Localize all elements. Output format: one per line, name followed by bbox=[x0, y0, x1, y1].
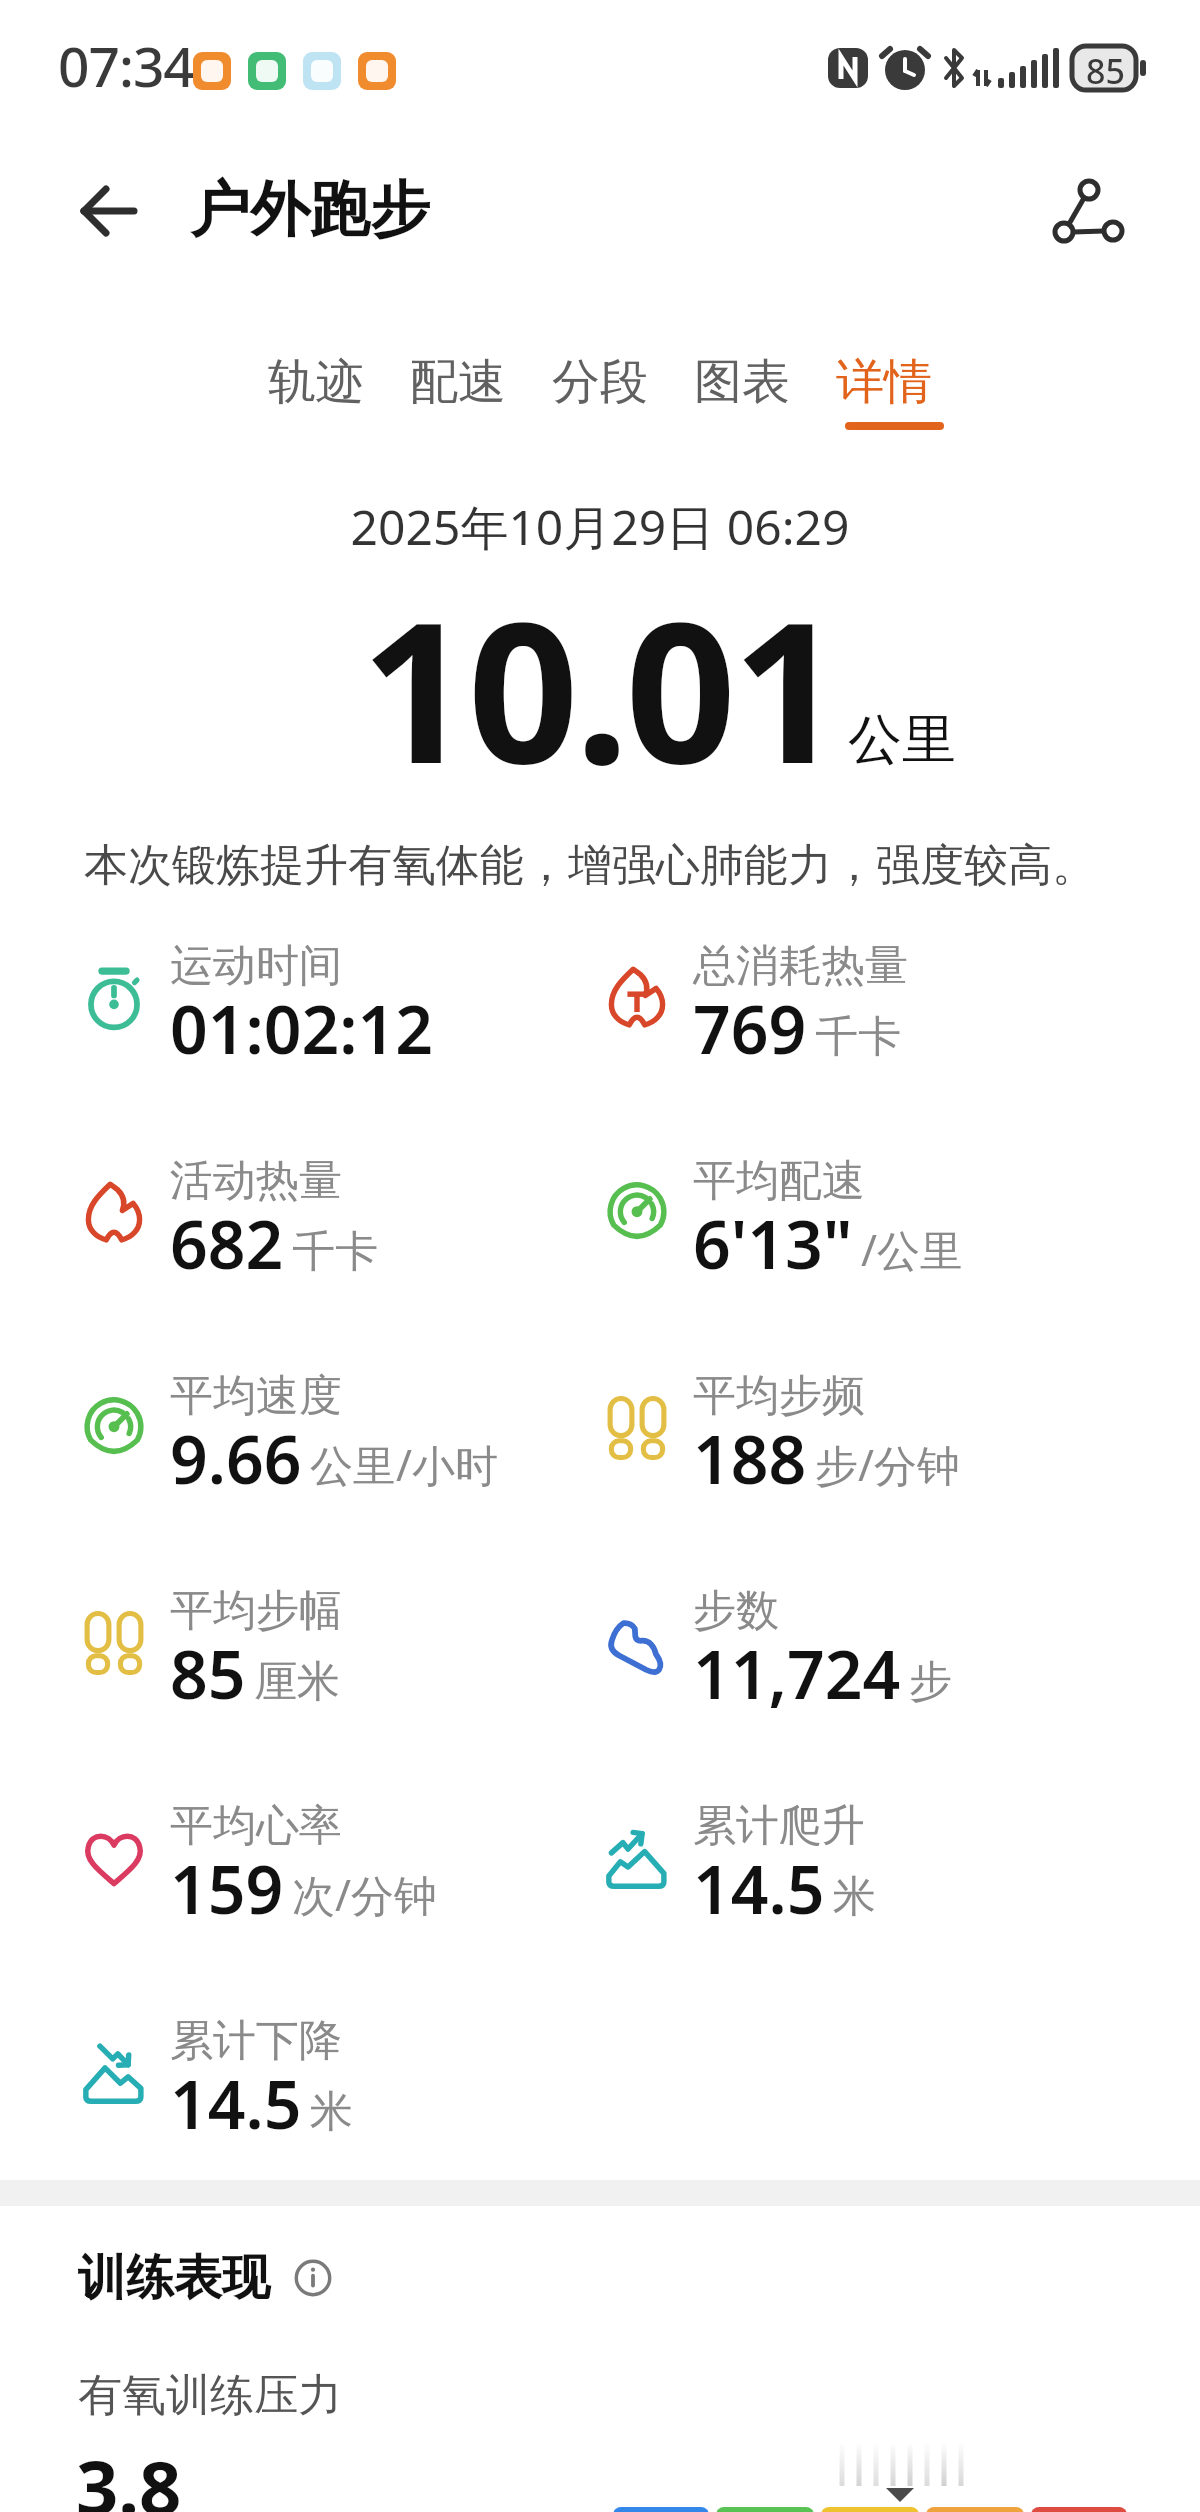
staticText: 训练表现 bbox=[78, 2248, 270, 2308]
button[interactable]: 9.66 bbox=[170, 1413, 498, 1503]
staticText: 01:02:12 bbox=[170, 983, 433, 1073]
button[interactable]: 769 bbox=[693, 983, 901, 1073]
staticText: 千卡 bbox=[292, 1225, 378, 1279]
staticText: 9.66 bbox=[170, 1413, 302, 1503]
staticText: 累计下降 bbox=[170, 2014, 342, 2068]
staticText: 682 bbox=[170, 1198, 284, 1288]
button[interactable]: 682 bbox=[170, 1198, 378, 1288]
button[interactable]: 详情 bbox=[836, 352, 932, 412]
staticText: 11,724 bbox=[693, 1628, 901, 1718]
button[interactable]: 188 bbox=[693, 1413, 960, 1503]
staticText: 2025年10月29日 06:29 bbox=[0, 494, 1200, 560]
button[interactable]: 6'13" bbox=[693, 1198, 963, 1288]
staticText: 米 bbox=[833, 1870, 876, 1924]
staticText: 公里/小时 bbox=[310, 1435, 498, 1494]
staticText: 详情 bbox=[836, 352, 932, 412]
staticText: 188 bbox=[693, 1413, 807, 1503]
staticText: 769 bbox=[693, 983, 807, 1073]
staticText: 活动热量 bbox=[170, 1154, 342, 1208]
staticText: 次/分钟 bbox=[292, 1865, 437, 1924]
staticText: 平均步频 bbox=[693, 1369, 865, 1423]
staticText: 运动时间 bbox=[170, 939, 342, 993]
button[interactable]: 轨迹 bbox=[268, 352, 364, 412]
staticText: 累计爬升 bbox=[693, 1799, 865, 1853]
staticText: 轨迹 bbox=[268, 352, 364, 412]
staticText: 步/分钟 bbox=[815, 1435, 960, 1494]
staticText: 步数 bbox=[693, 1584, 779, 1638]
staticText: 千卡 bbox=[815, 1010, 901, 1064]
staticText: 平均配速 bbox=[693, 1154, 865, 1208]
button[interactable]: 分段 bbox=[552, 352, 648, 412]
staticText: 有氧训练压力 bbox=[78, 2368, 342, 2423]
staticText: 159 bbox=[170, 1843, 284, 1933]
staticText: /公里 bbox=[861, 1220, 963, 1279]
staticText: 米 bbox=[310, 2085, 353, 2139]
staticText: 厘米 bbox=[254, 1655, 340, 1709]
button[interactable] bbox=[80, 186, 138, 236]
button[interactable]: 训练表现 bbox=[78, 2248, 332, 2308]
staticText: 步 bbox=[909, 1655, 952, 1709]
staticText: 图表 bbox=[694, 352, 790, 412]
staticText: 平均步幅 bbox=[170, 1584, 342, 1638]
button[interactable]: 14.5 bbox=[693, 1843, 876, 1933]
staticText: 14.5 bbox=[170, 2058, 302, 2148]
button[interactable]: 159 bbox=[170, 1843, 437, 1933]
staticText: 14.5 bbox=[693, 1843, 825, 1933]
staticText: 配速 bbox=[410, 352, 506, 412]
staticText: 本次锻炼提升有氧体能，增强心肺能力，强度较高。 bbox=[84, 838, 1096, 893]
button[interactable]: 14.5 bbox=[170, 2058, 353, 2148]
staticText: 6'13" bbox=[693, 1198, 853, 1288]
staticText: 平均速度 bbox=[170, 1369, 342, 1423]
staticText: 户外跑步 bbox=[190, 172, 430, 248]
staticText: 分段 bbox=[552, 352, 648, 412]
staticText: 公里 bbox=[848, 706, 956, 774]
button[interactable]: 配速 bbox=[410, 352, 506, 412]
staticText: 10.01 bbox=[0, 556, 1200, 820]
staticText: 85 bbox=[1086, 48, 1125, 94]
button[interactable] bbox=[1048, 176, 1130, 246]
staticText: 3.8 bbox=[76, 2436, 182, 2512]
staticText: 85 bbox=[170, 1628, 246, 1718]
button[interactable]: 图表 bbox=[694, 352, 790, 412]
staticText: 平均心率 bbox=[170, 1799, 342, 1853]
button[interactable]: 85 bbox=[170, 1628, 340, 1718]
button[interactable]: 01:02:12 bbox=[170, 983, 433, 1073]
button[interactable]: 11,724 bbox=[693, 1628, 952, 1718]
staticText: 07:34 bbox=[58, 28, 194, 103]
staticText: 总消耗热量 bbox=[693, 939, 908, 993]
